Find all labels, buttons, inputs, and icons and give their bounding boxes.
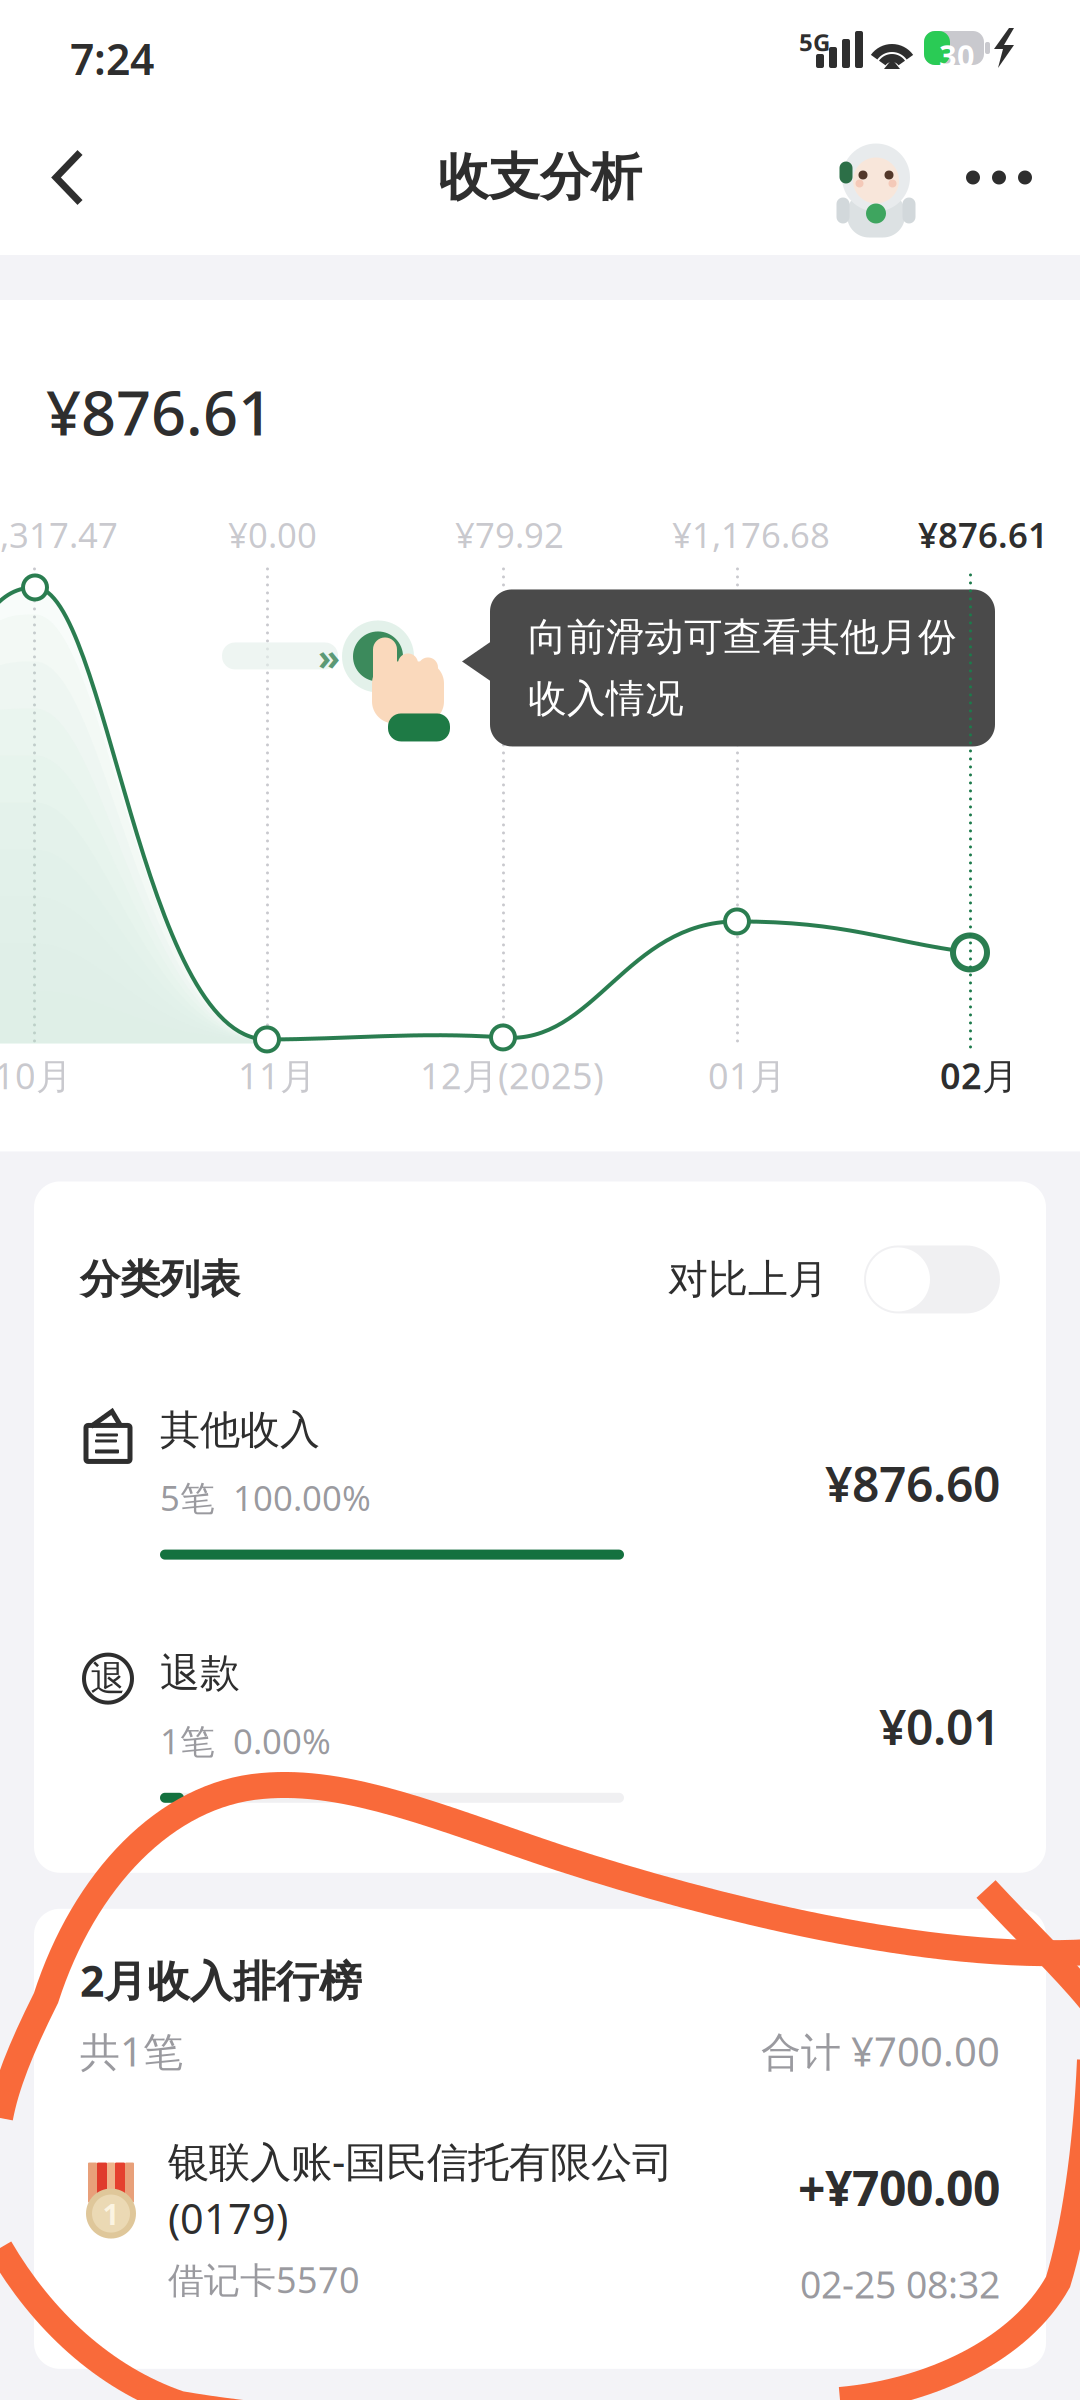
button[interactable]: 退 [34,1649,1046,1803]
staticText: 收入情况 [528,675,684,722]
staticText: 1笔 [160,1718,215,1764]
staticText: ¥876.61 [46,371,273,452]
staticText: 7:24 [70,30,154,87]
staticText: 分类列表 [80,1255,240,1304]
staticText: 2月收入排行榜 [80,1952,362,2008]
staticText: 01月 [708,1051,786,1099]
button[interactable]: Compare with last month [864,1245,1000,1313]
staticText: 对比上月 [668,1255,828,1304]
staticText: 5笔 [160,1475,215,1521]
staticText: ¥876.61 [918,511,1048,557]
staticText: 02月 [940,1051,1018,1099]
staticText: 100.00% [233,1475,371,1521]
staticText: 共1笔 [80,2024,183,2077]
button[interactable]: Assistant [826,115,926,239]
staticText: » [318,632,340,680]
button[interactable]: More [948,138,1050,216]
staticText: ¥0.01 [879,1695,1000,1758]
staticText: ¥876.60 [825,1451,1000,1515]
staticText: ¥1,176.68 [672,511,830,557]
staticText: +¥700.00 [798,2156,1000,2219]
staticText: 借记卡5570 [168,2255,360,2303]
staticText: 0.00% [233,1718,331,1764]
staticText: ¥0.00 [228,511,317,557]
staticText: 12月(2025) [420,1051,604,1099]
staticText: 11月 [238,1051,316,1099]
staticText: 退 [90,1657,125,1700]
staticText: 02-25 08:32 [800,2259,1000,2309]
staticText: 10月 [0,1051,72,1099]
staticText: (0179) [168,2190,288,2245]
staticText: 向前滑动可查看其他月份 [528,613,957,661]
staticText: 4,317.47 [0,511,118,557]
staticText: 1 [102,2194,119,2233]
button[interactable]: 其他收入 [34,1405,1046,1560]
staticText: 收支分析 [438,146,642,209]
staticText: ¥79.92 [455,511,564,557]
staticText: 5G [799,26,830,58]
button[interactable]: Back [25,124,111,230]
staticText: 其他收入 [160,1405,320,1454]
staticText: 退款 [160,1649,240,1698]
staticText: 30 [939,35,975,76]
button[interactable]: 1 [34,2134,1046,2309]
staticText: 银联入账-国民信托有限公司 [168,2134,673,2188]
staticText: 合计 ¥700.00 [761,2024,1000,2077]
